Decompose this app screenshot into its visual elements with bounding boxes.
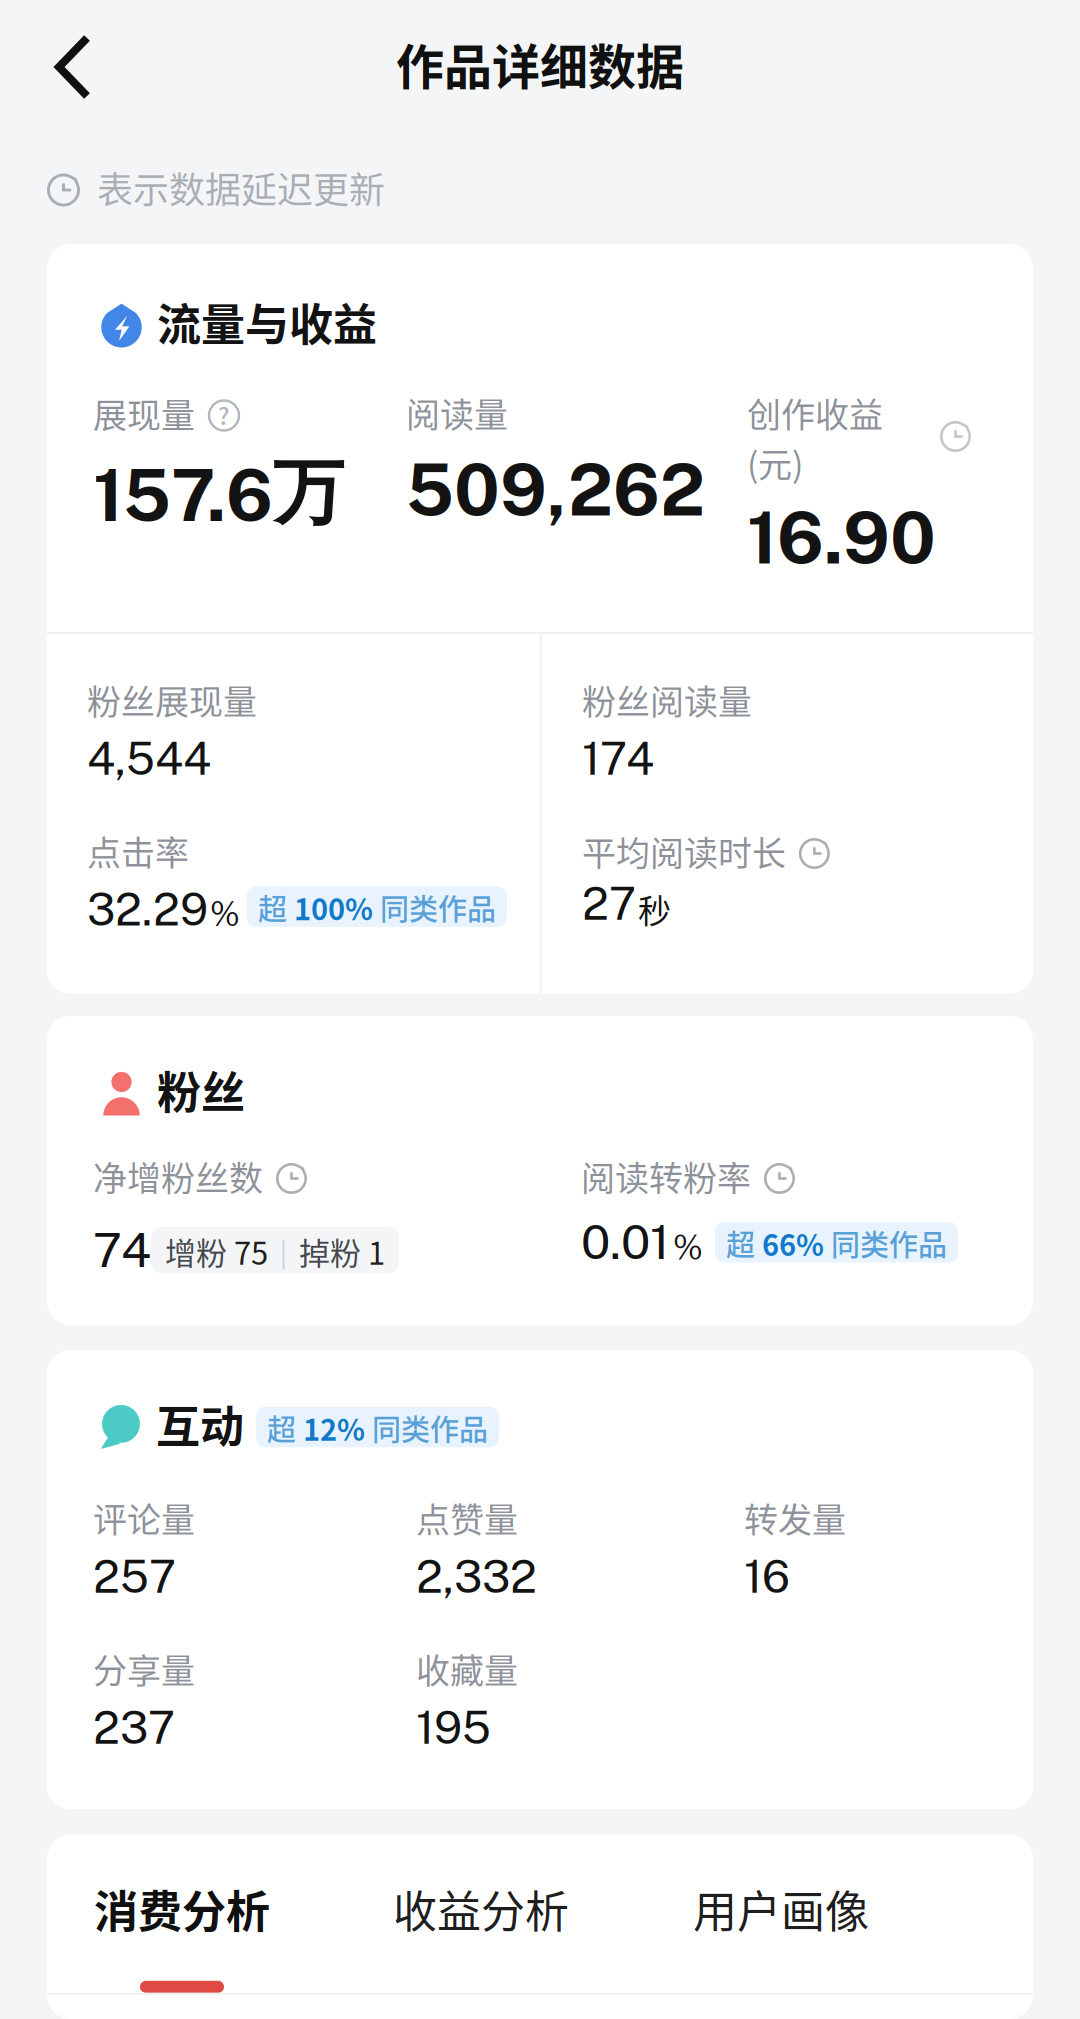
staticText: 分享量 <box>93 1644 195 1693</box>
staticText: 1 <box>368 1229 385 1274</box>
staticText: | <box>268 1232 299 1270</box>
staticText: 净增粉丝数 <box>93 1151 263 1201</box>
staticText: 2,332 <box>416 1550 537 1603</box>
staticText: 257 <box>93 1550 176 1603</box>
staticText: 同类作品 <box>824 1222 947 1264</box>
staticText: 消费分析 <box>94 1877 270 1941</box>
staticText: 27 <box>582 877 636 930</box>
staticText: 超 <box>726 1222 762 1264</box>
staticText: ? <box>218 398 230 432</box>
staticText: 平均阅读时长 <box>582 826 786 876</box>
staticText: 同类作品 <box>365 1407 488 1449</box>
staticText: 粉丝 <box>157 1058 245 1122</box>
staticText: % <box>210 895 240 933</box>
staticText: 展现量 <box>93 388 195 438</box>
staticText: 收益分析 <box>393 1877 569 1941</box>
staticText: 32.29 <box>87 883 208 936</box>
staticText: 互动 <box>156 1392 244 1456</box>
staticText: 195 <box>416 1701 491 1754</box>
staticText: 75 <box>234 1229 268 1274</box>
staticText: 0.01 <box>581 1213 670 1270</box>
staticText: 66% <box>762 1222 824 1264</box>
staticText: 4,544 <box>87 732 211 785</box>
staticText: 秒 <box>638 885 671 933</box>
button[interactable]: Back <box>0 9 108 125</box>
staticText: 74 <box>93 1221 151 1278</box>
staticText: 100% <box>294 887 373 929</box>
staticText: 超 <box>258 887 294 929</box>
staticText: 创作收益 <box>747 388 883 437</box>
staticText: 流量与收益 <box>157 290 377 354</box>
staticText: 157.6万 <box>93 448 344 537</box>
staticText: 粉丝展现量 <box>87 675 257 724</box>
staticText: 点击率 <box>87 826 189 875</box>
button[interactable]: 收益分析 <box>393 1891 693 1993</box>
staticText: 同类作品 <box>373 887 496 929</box>
staticText: 174 <box>582 732 654 785</box>
button[interactable]: 消费分析 <box>94 1891 393 1993</box>
staticText: 16.90 <box>747 496 936 579</box>
staticText: 用户画像 <box>693 1877 869 1941</box>
staticText: 超 <box>267 1407 303 1449</box>
staticText: 12% <box>303 1407 365 1449</box>
staticText: 16 <box>744 1550 790 1603</box>
staticText: 点赞量 <box>416 1493 518 1542</box>
staticText: 表示数据延迟更新 <box>97 161 385 213</box>
staticText: 509,262 <box>406 448 705 531</box>
staticText: 粉丝阅读量 <box>582 675 752 724</box>
staticText: 转发量 <box>744 1493 846 1542</box>
staticText: 阅读量 <box>406 388 508 437</box>
staticText: 增粉 <box>165 1229 234 1274</box>
staticText: 237 <box>93 1701 175 1754</box>
staticText: 收藏量 <box>416 1644 518 1693</box>
staticText: 评论量 <box>93 1493 195 1542</box>
staticText: 作品详细数据 <box>396 29 684 98</box>
button[interactable]: 用户画像 <box>693 1891 992 1993</box>
staticText: 阅读转粉率 <box>581 1151 751 1201</box>
staticText: % <box>673 1228 703 1267</box>
staticText: (元) <box>747 438 803 487</box>
staticText: 掉粉 <box>299 1229 368 1274</box>
